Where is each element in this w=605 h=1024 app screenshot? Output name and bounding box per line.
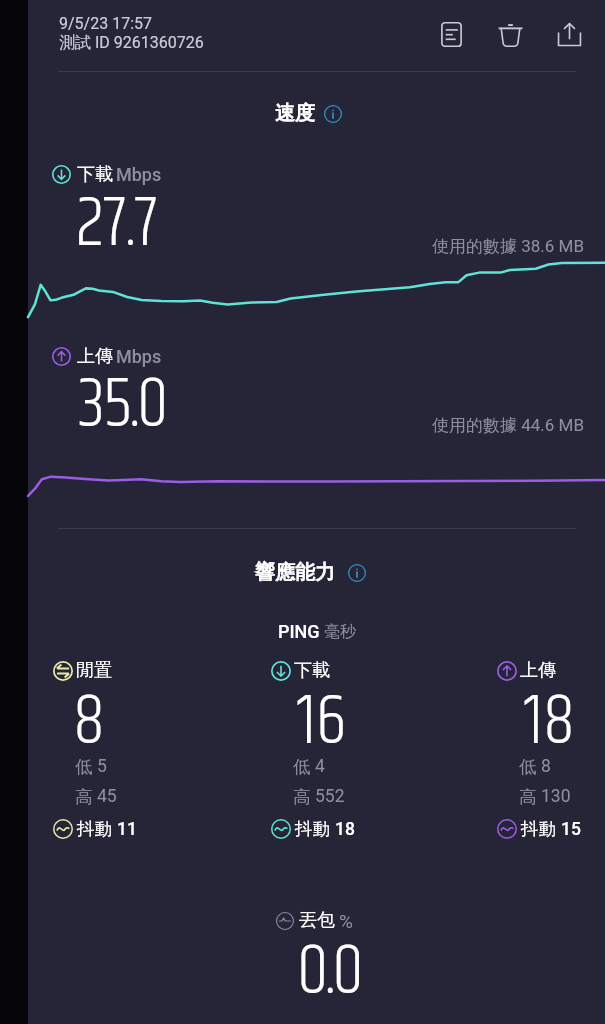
staticText: 45 [97,786,117,807]
button[interactable]: Share [547,12,592,57]
staticText: 35.0 [78,351,167,460]
staticText: 下載 [77,163,113,186]
button[interactable]: Delete [488,12,533,57]
staticText: 抖動 [295,818,335,840]
staticText: 18 [335,819,355,840]
staticText: 高 [75,786,97,808]
staticText: 11 [117,819,137,840]
staticText: Mbps [116,164,162,185]
staticText: 下載 [294,659,330,682]
staticText: 上傳 [77,345,113,368]
staticText: 8 [541,756,551,777]
staticText: 9/5/23 17:57 [59,14,152,33]
staticText: 使用的數據 38.6 MB [432,236,585,257]
staticText: 使用的數據 44.6 MB [432,415,585,436]
staticText: 抖動 [521,818,561,840]
staticText: 抖動 [77,818,117,840]
staticText: 響應能力 [255,560,335,585]
staticText: 5 [97,756,107,777]
staticText: 16 [297,668,347,777]
staticText: 低 [293,756,315,778]
staticText: 閒置 [76,659,112,682]
button[interactable]: Results [429,12,474,57]
staticText: 130 [541,786,571,807]
staticText: 27.7 [76,170,158,279]
staticText: 0.0 [297,918,361,1024]
staticText: PING [278,621,320,642]
staticText: 15 [561,819,581,840]
staticText: 測試 ID 9261360726 [59,33,204,53]
staticText: 高 [519,786,541,808]
staticText: 低 [75,756,97,778]
staticText: 毫秒 [324,622,356,642]
staticText: 上傳 [520,659,556,682]
staticText: 4 [315,756,325,777]
staticText: 18 [524,668,575,777]
staticText: Mbps [116,346,162,367]
staticText: 丟包 [299,909,335,932]
staticText: 高 [293,786,315,808]
staticText: 552 [315,786,345,807]
staticText: 8 [73,668,105,777]
staticText: 速度 [275,101,315,126]
staticText: % [339,910,353,932]
staticText: 低 [519,756,541,778]
